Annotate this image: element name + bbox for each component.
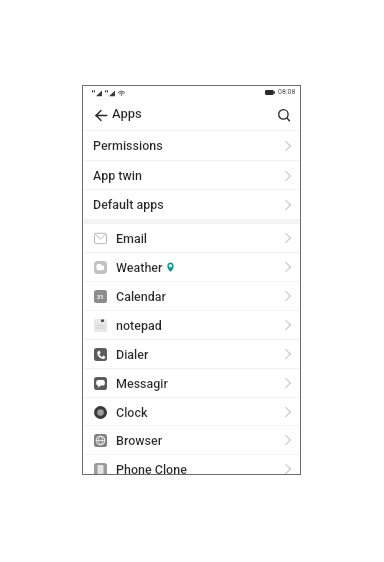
button[interactable]: Default apps <box>83 190 300 219</box>
staticText: 08:08 <box>278 88 296 96</box>
staticText: 31 <box>97 293 104 300</box>
button[interactable]: Back <box>83 97 112 130</box>
button[interactable]: App twin <box>83 161 300 190</box>
staticText: Browser <box>116 433 163 448</box>
button[interactable]: Browser <box>83 426 300 454</box>
staticText: Clock <box>116 405 148 420</box>
button[interactable]: Email <box>83 224 300 252</box>
staticText: Phone Clone <box>116 462 187 474</box>
button[interactable]: Dialer <box>83 340 300 368</box>
button[interactable]: 31 <box>83 282 300 310</box>
button[interactable]: Permissions <box>83 131 300 160</box>
button[interactable]: Clock <box>83 398 300 426</box>
staticText: Apps <box>112 106 142 121</box>
staticText: Calendar <box>116 289 166 304</box>
staticText: App twin <box>93 168 142 183</box>
button[interactable]: Search <box>272 97 300 130</box>
staticText: Default apps <box>93 197 164 212</box>
staticText: notepad <box>116 318 162 333</box>
staticText: Email <box>116 231 148 246</box>
button[interactable]: notepad <box>83 311 300 339</box>
button[interactable]: Messagir <box>83 369 300 397</box>
button[interactable]: Weather <box>83 253 300 281</box>
staticText: Dialer <box>116 347 149 362</box>
staticText: Messagir <box>116 376 168 391</box>
staticText: Permissions <box>93 138 163 153</box>
staticText: Weather <box>116 260 163 275</box>
button[interactable]: Phone Clone <box>83 455 300 474</box>
